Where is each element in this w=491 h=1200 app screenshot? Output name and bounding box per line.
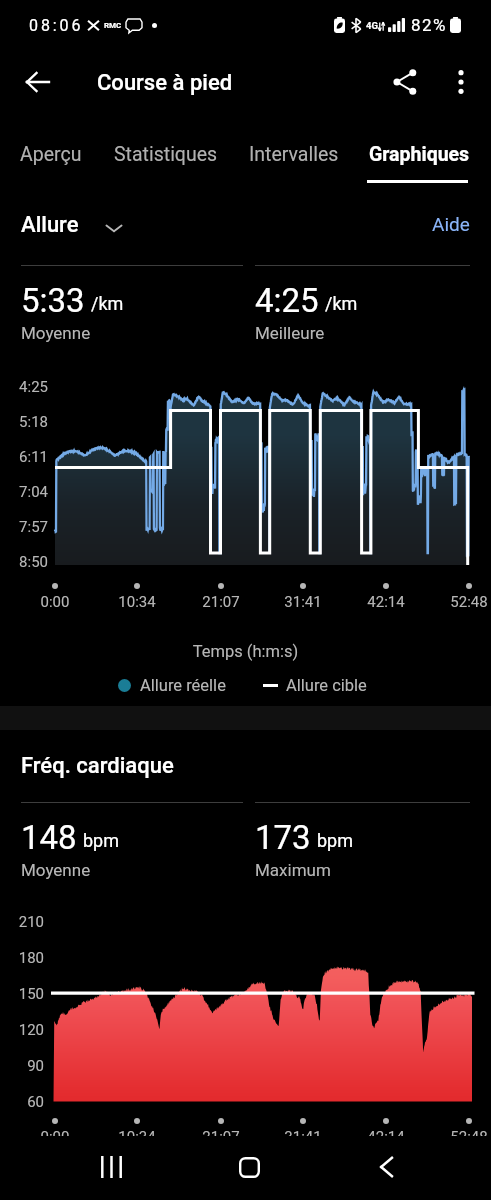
staticText: Allure (21, 212, 79, 238)
button[interactable]: Back (341, 1140, 431, 1194)
staticText: 42:14 (356, 593, 416, 611)
staticText: 4G (366, 20, 378, 31)
staticText: 8:50 (0, 553, 48, 571)
staticText: Maximum (255, 860, 331, 880)
button[interactable]: Statistiques (104, 116, 228, 184)
staticText: 148 (21, 818, 77, 857)
staticText: 180 (0, 949, 44, 967)
staticText: 10:34 (107, 1128, 167, 1146)
staticText: 52:48 (439, 1128, 491, 1146)
staticText: 31:41 (273, 593, 333, 611)
staticText: 0:00 (25, 593, 85, 611)
staticText: 52:48 (439, 593, 491, 611)
staticText: 10:34 (107, 593, 167, 611)
staticText: 5:18 (0, 413, 48, 431)
staticText: 7:04 (0, 483, 48, 501)
button[interactable]: Graphiques (358, 116, 480, 184)
staticText: Allure réelle (140, 676, 226, 695)
staticText: 0:00 (25, 1128, 85, 1146)
staticText: 173 (255, 818, 311, 857)
staticText: Graphiques (369, 143, 470, 166)
staticText: 5:33 (21, 281, 85, 320)
staticText: 21:07 (191, 593, 251, 611)
staticText: Moyenne (21, 860, 91, 880)
staticText: bpm (83, 830, 119, 851)
staticText: 150 (0, 985, 44, 1003)
staticText: Fréq. cardiaque (21, 753, 174, 779)
staticText: Aperçu (20, 143, 82, 166)
staticText: Course à pied (97, 70, 233, 96)
button[interactable]: Home (204, 1140, 294, 1194)
staticText: 31:41 (273, 1128, 333, 1146)
staticText: 120 (0, 1021, 44, 1039)
staticText: RMC (104, 21, 122, 30)
staticText: 4:25 (0, 378, 48, 396)
staticText: 4:25 (255, 281, 319, 320)
staticText: 42:14 (356, 1128, 416, 1146)
staticText: Allure cible (286, 676, 367, 695)
staticText: Temps (h:m:s) (0, 642, 491, 661)
button[interactable]: Aide (432, 213, 470, 235)
button[interactable]: Intervalles (239, 116, 349, 184)
staticText: 6:11 (0, 448, 48, 466)
staticText: Statistiques (114, 143, 218, 166)
button[interactable]: More options (435, 59, 483, 107)
staticText: Intervalles (249, 143, 339, 166)
button[interactable]: Allure (21, 212, 123, 238)
staticText: 82% (411, 15, 447, 35)
button[interactable]: Recent apps (66, 1140, 156, 1194)
staticText: Meilleure (255, 323, 325, 343)
button[interactable]: Aperçu (11, 116, 91, 184)
staticText: bpm (317, 830, 353, 851)
button[interactable]: Back (14, 59, 62, 107)
staticText: /km (325, 293, 358, 314)
staticText: 90 (0, 1057, 44, 1075)
staticText: 210 (0, 913, 44, 931)
staticText: Aide (432, 213, 470, 235)
staticText: 60 (0, 1093, 44, 1111)
staticText: /km (91, 293, 124, 314)
button[interactable]: Share (387, 59, 435, 107)
staticText: 08:06 (29, 16, 84, 35)
staticText: Moyenne (21, 323, 91, 343)
staticText: 21:07 (191, 1128, 251, 1146)
staticText: 7:57 (0, 518, 48, 536)
